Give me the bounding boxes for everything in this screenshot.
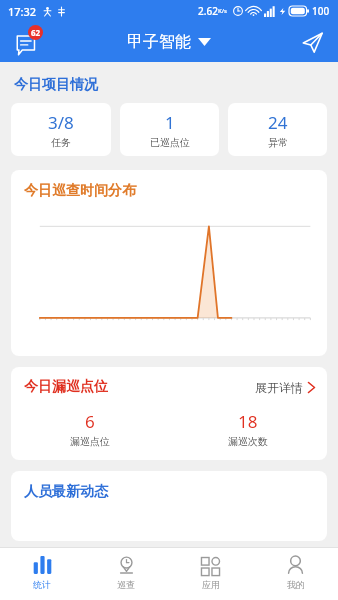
staticText: 18 — [238, 410, 258, 433]
staticText: K/s — [218, 7, 228, 15]
staticText: 漏巡点位 — [70, 435, 110, 448]
button[interactable]: 统计 — [0, 547, 84, 600]
staticText: 6 — [85, 410, 95, 433]
staticText: 已巡点位 — [150, 136, 190, 149]
staticText: 异常 — [268, 136, 288, 149]
staticText: 甲子智能 — [127, 32, 191, 52]
button[interactable]: 人员最新动态 — [11, 471, 327, 541]
staticText: 任务 — [51, 136, 71, 149]
button[interactable]: 1 — [120, 103, 219, 156]
button[interactable]: Send — [294, 24, 330, 60]
staticText: 24 — [268, 111, 288, 134]
button[interactable]: 今日巡查时间分布 — [11, 170, 327, 356]
staticText: 1 — [165, 111, 175, 134]
button[interactable]: 展开详情 — [255, 380, 315, 395]
button[interactable]: 甲子智能 — [127, 32, 211, 52]
staticText: 统计 — [33, 579, 51, 590]
staticText: 2.62 — [198, 4, 218, 18]
button[interactable]: 我的 — [253, 547, 338, 600]
button[interactable]: Messages — [8, 24, 44, 60]
staticText: 人员最新动态 — [24, 483, 108, 501]
button[interactable]: 3/8 — [11, 103, 111, 156]
staticText: 漏巡次数 — [228, 435, 268, 448]
button[interactable]: 巡查 — [84, 547, 168, 600]
staticText: 今日项目情况 — [14, 76, 98, 94]
staticText: 我的 — [287, 579, 305, 590]
staticText: 应用 — [202, 579, 220, 590]
staticText: 17:32 — [8, 4, 37, 19]
staticText: 今日漏巡点位 — [24, 378, 108, 396]
staticText: 62 — [31, 27, 41, 38]
staticText: 展开详情 — [255, 380, 303, 395]
staticText: 100 — [312, 4, 330, 18]
staticText: 巡查 — [117, 579, 135, 590]
staticText: 3/8 — [48, 111, 74, 134]
button[interactable]: 24 — [228, 103, 327, 156]
staticText: 今日巡查时间分布 — [24, 182, 136, 200]
button[interactable]: 应用 — [168, 547, 253, 600]
